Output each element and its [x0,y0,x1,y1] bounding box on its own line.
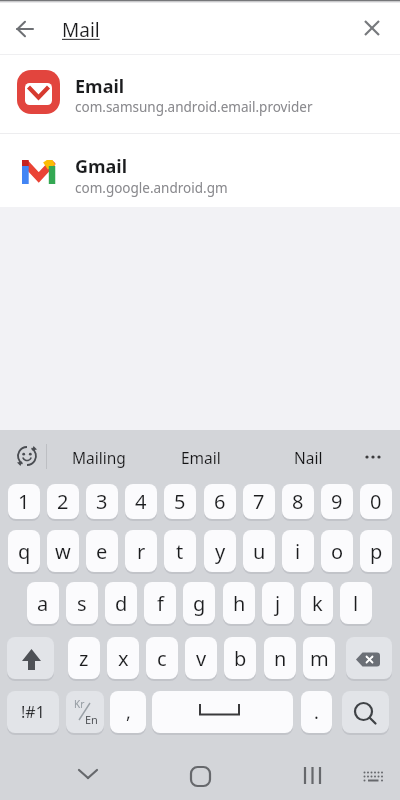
staticText: x [118,645,129,672]
staticText: 3 [96,488,108,515]
staticText: !#1 [21,701,45,723]
staticText: q [18,538,31,565]
staticText: l [353,590,359,617]
staticText: 0 [370,488,382,515]
staticText: n [274,645,287,672]
staticText: Mail [62,17,100,43]
staticText: a [37,590,49,617]
staticText: 9 [331,488,343,515]
staticText: 4 [135,488,147,515]
staticText: s [77,590,87,617]
staticText: m [310,645,329,672]
staticText: o [331,538,344,565]
staticText: Kr [74,697,85,711]
staticText: com.google.android.gm [75,179,228,197]
staticText: h [233,590,246,617]
staticText: En [85,712,98,727]
staticText: y [215,538,226,565]
staticText: com.samsung.android.email.provider [75,98,313,116]
staticText: Mailing [72,447,126,468]
staticText: d [115,590,128,617]
staticText: Email [181,447,221,468]
staticText: g [193,590,206,617]
staticText: , [126,700,131,725]
staticText: w [55,538,71,565]
staticText: Gmail [75,154,128,179]
staticText: k [312,590,323,617]
staticText: 1 [18,488,30,515]
staticText: 6 [214,488,226,515]
staticText: b [234,645,247,672]
staticText: Email [75,74,125,99]
staticText: j [275,590,281,617]
staticText: z [79,645,89,672]
staticText: 8 [292,488,304,515]
staticText: 2 [57,488,69,515]
staticText: 5 [174,488,186,515]
staticText: v [196,645,207,672]
staticText: r [137,538,146,565]
staticText: t [176,538,184,565]
staticText: p [370,538,383,565]
staticText: Nail [294,447,323,468]
staticText: . [314,700,319,725]
staticText: 7 [253,488,265,515]
staticText: e [96,538,108,565]
staticText: f [157,590,164,617]
staticText: i [295,538,301,565]
staticText: c [157,645,167,672]
staticText: u [253,538,266,565]
